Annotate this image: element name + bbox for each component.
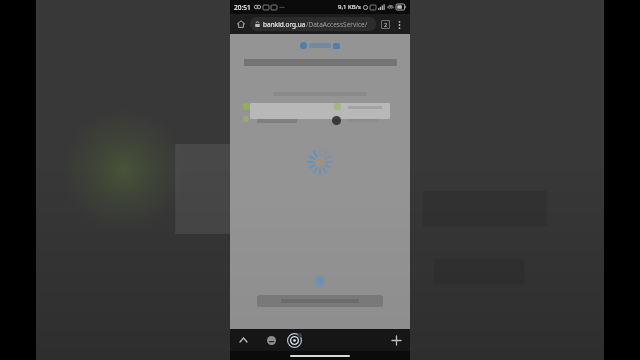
button[interactable] xyxy=(257,295,383,307)
staticText: bankid.org.ua xyxy=(263,20,306,29)
button[interactable]: Downloads xyxy=(263,332,279,348)
button[interactable]: More options xyxy=(393,18,406,31)
staticText: 2 xyxy=(384,21,388,28)
staticText: 9,1 KB/s xyxy=(338,3,361,11)
button[interactable]: Home xyxy=(234,17,248,31)
button[interactable]: Tabs xyxy=(379,18,392,31)
button[interactable]: bankid.org.ua xyxy=(250,17,376,31)
button[interactable]: Expand xyxy=(235,332,251,348)
staticText: 20:51 xyxy=(234,3,251,12)
button[interactable]: New tab xyxy=(387,331,405,349)
button[interactable]: Current tab xyxy=(285,331,303,349)
staticText: /DataAccessService/ xyxy=(306,20,368,29)
